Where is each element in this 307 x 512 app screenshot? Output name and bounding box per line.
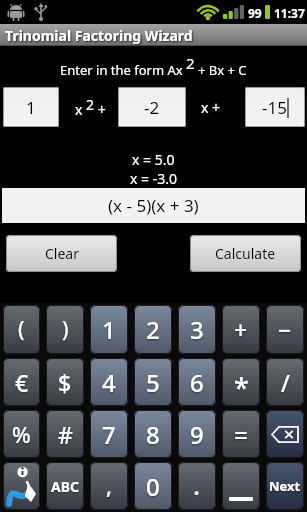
staticText: ABC [51,477,79,496]
staticText: 6 [190,366,204,399]
staticText: Trinomial Factoring Wizard [5,26,193,45]
staticText: -2 [144,96,160,119]
staticText: 99 [248,5,262,21]
staticText: ) [62,315,69,344]
button[interactable] [222,462,260,510]
button[interactable]: $ [46,358,84,406]
staticText: 7 [102,418,116,451]
staticText: % [12,419,31,449]
staticText: + [234,314,248,345]
staticText: Next [269,477,301,495]
button[interactable]: -2 [118,87,186,127]
staticText: # [58,419,73,450]
staticText: $ [58,367,72,398]
button[interactable]: ) [46,305,84,354]
staticText: 2 [146,313,160,346]
staticText: x + [201,98,221,117]
button[interactable]: Next [266,462,304,510]
button[interactable]: * [222,358,260,406]
staticText: -15 [262,96,287,119]
button[interactable]: # [46,410,84,458]
button[interactable]: ( [3,305,40,354]
button[interactable]: + [222,305,260,354]
button[interactable]: % [3,410,40,458]
staticText: , [106,470,113,500]
staticText: 9 [190,418,204,451]
staticText: (x - 5)(x + 3) [108,194,199,217]
button[interactable]: 6 [178,358,216,406]
button[interactable]: € [3,358,40,406]
staticText: 1 [26,96,36,119]
button[interactable]: 4 [90,358,128,406]
button[interactable]: Clear [6,235,117,272]
staticText: 0 [146,470,160,503]
staticText: 3 [190,313,204,346]
button[interactable] [3,462,40,510]
staticText: € [15,367,29,398]
staticText: − [278,314,292,345]
staticText: = [234,418,248,451]
button[interactable]: 1 [3,87,59,127]
button[interactable]: 3 [178,305,216,354]
button[interactable] [266,410,304,458]
staticText: Calculate [215,244,276,263]
staticText: * [234,369,249,406]
staticText: / [281,367,290,398]
staticText: x 2 + [75,95,106,119]
button[interactable]: Calculate [190,235,301,272]
staticText: 11:37 [274,5,305,21]
staticText: . [193,467,201,502]
staticText: Clear [45,244,79,263]
button[interactable]: = [222,410,260,458]
button[interactable]: 1 [90,305,128,354]
staticText: Enter in the form Ax 2 + Bx + C [60,53,247,81]
button[interactable]: . [178,462,216,510]
button[interactable]: 8 [134,410,172,458]
staticText: ( [18,315,25,344]
button[interactable]: ABC [46,462,84,510]
staticText: 8 [146,418,160,451]
button[interactable]: − [266,305,304,354]
staticText: 4 [102,366,116,399]
button[interactable]: 0 [134,462,172,510]
button[interactable]: 9 [178,410,216,458]
button[interactable]: -15 [245,87,305,127]
staticText: x = 5.0 [132,150,175,169]
button[interactable]: / [266,358,304,406]
button[interactable]: 5 [134,358,172,406]
button[interactable]: , [90,462,128,510]
staticText: x = -3.0 [130,169,177,188]
staticText: 1 [102,313,116,346]
button[interactable]: 2 [134,305,172,354]
button[interactable]: (x - 5)(x + 3) [2,188,305,223]
button[interactable]: 7 [90,410,128,458]
staticText: 5 [146,366,160,399]
